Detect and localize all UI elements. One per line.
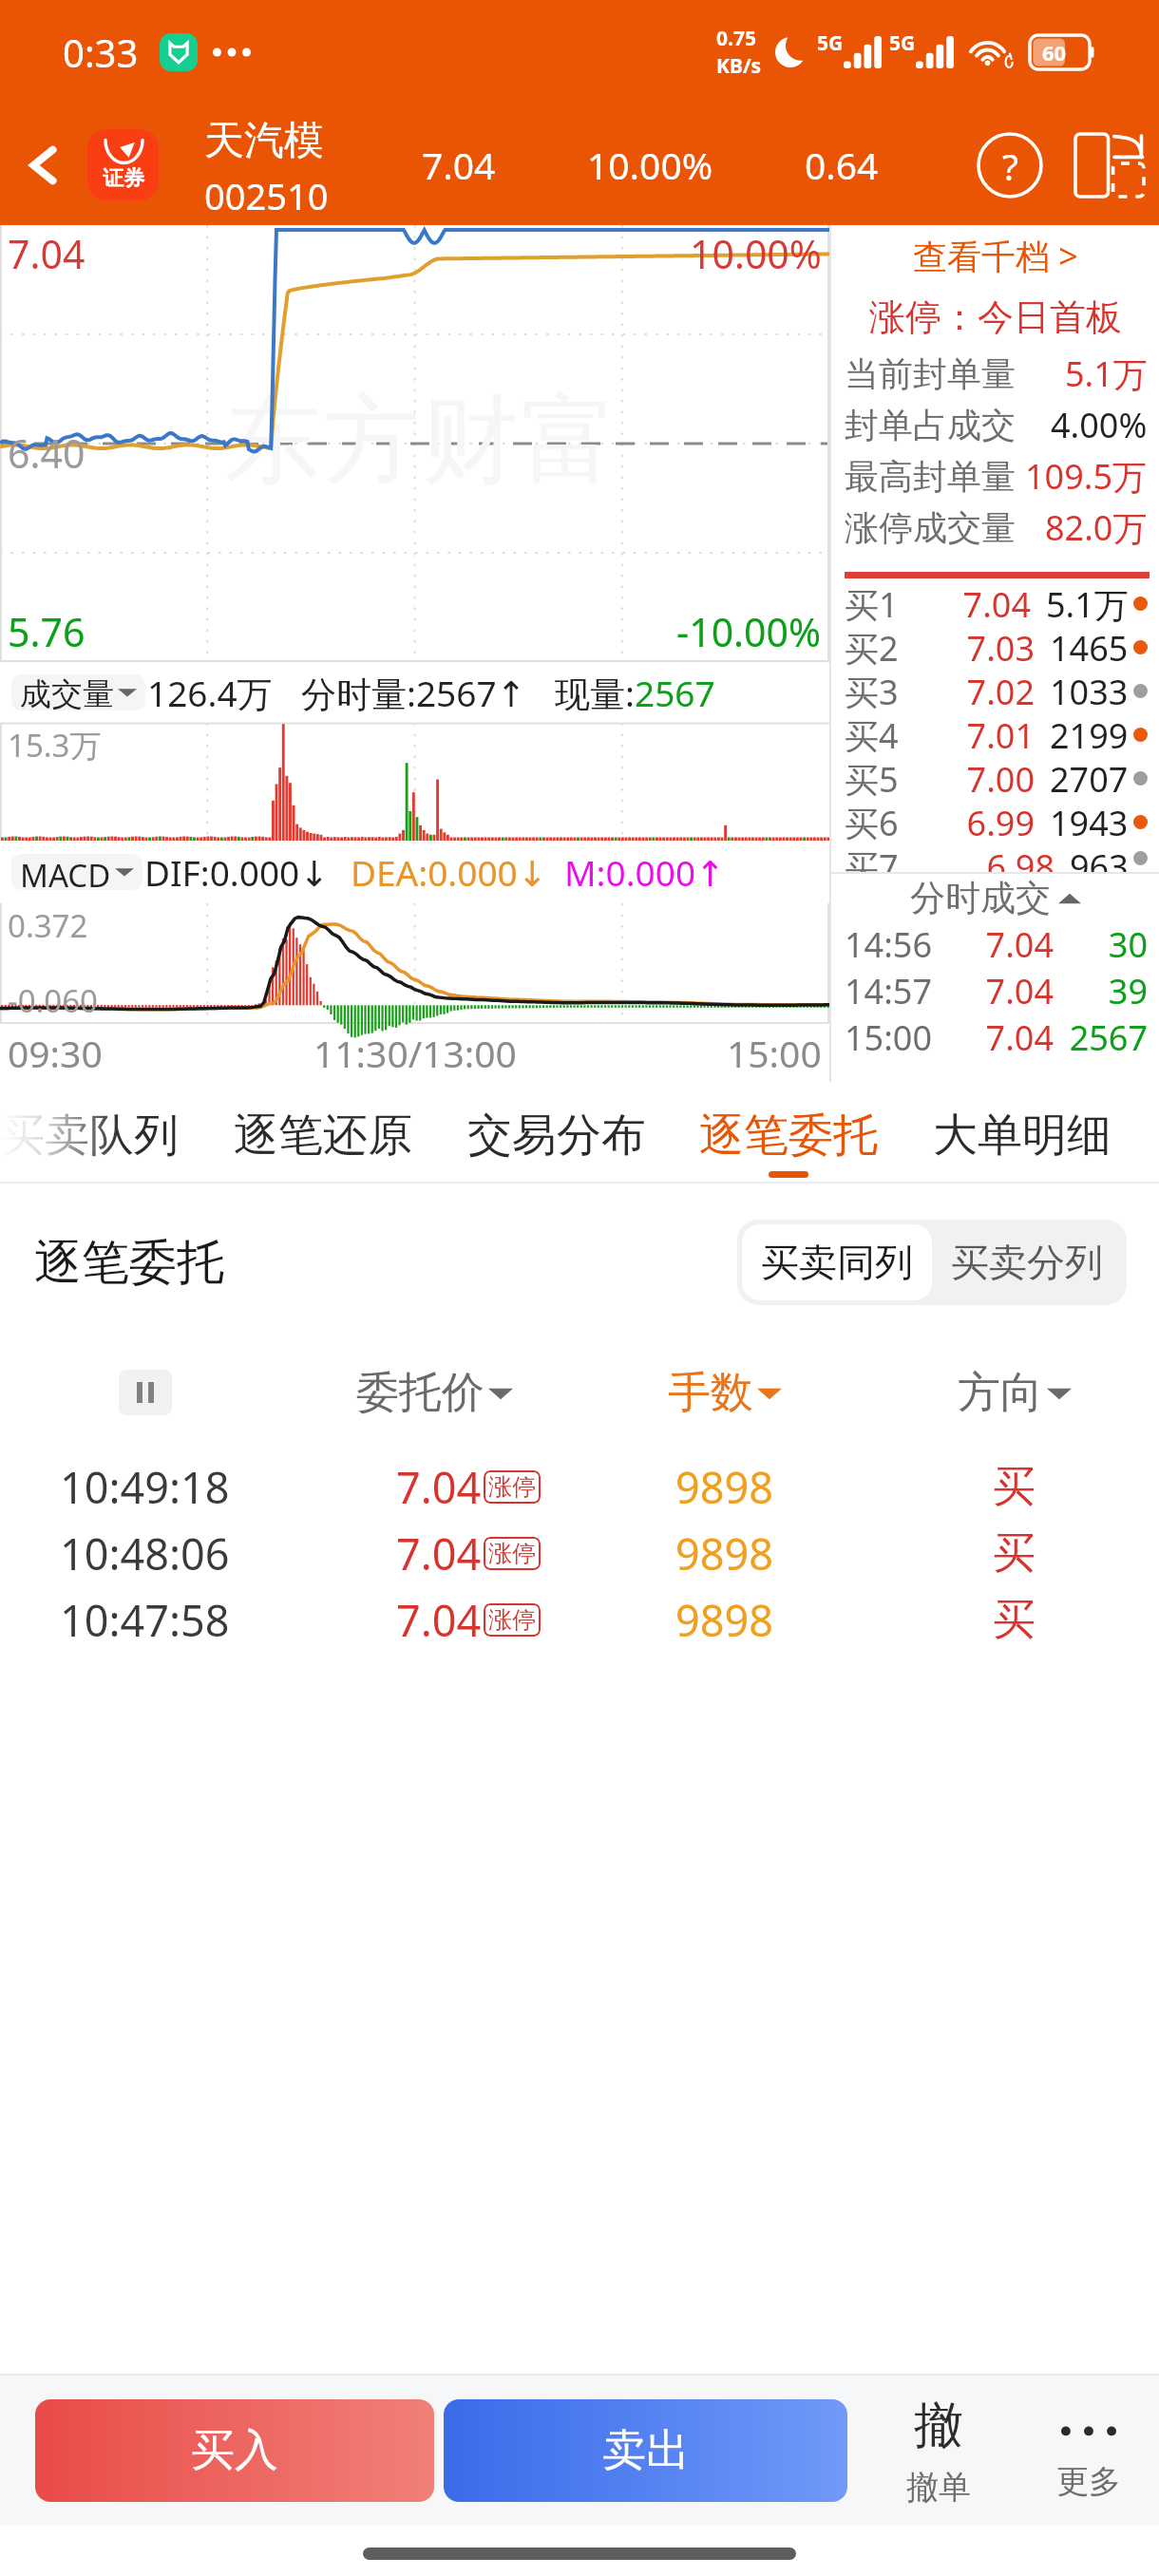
staticText: -0.060 [8, 979, 98, 1022]
staticText: 126.4万 [147, 669, 273, 717]
button[interactable]: 买6 [845, 800, 1148, 843]
staticText: 天汽模 [204, 116, 324, 166]
button[interactable]: 买卖队列 [0, 1082, 179, 1184]
staticText: 14:56 [845, 921, 933, 968]
staticText: 6.99 [899, 800, 1035, 843]
staticText: 委托价 [356, 1366, 484, 1420]
button[interactable]: Back [0, 104, 87, 225]
staticText: 卖出 [602, 2423, 690, 2478]
staticText: 109.5万 [1025, 453, 1148, 500]
staticText: 30 [1054, 921, 1148, 968]
staticText: 5.76 [8, 605, 85, 658]
staticText: 10:48:06 [60, 1525, 230, 1582]
staticText: 7.04 [933, 1014, 1054, 1061]
staticText: 5G [889, 29, 916, 57]
staticText: 39 [1054, 968, 1148, 1014]
button[interactable]: MACD [11, 854, 142, 890]
button[interactable]: 委托价 [290, 1341, 579, 1444]
staticText: 7.01 [899, 712, 1035, 756]
staticText: 2567 [635, 669, 715, 716]
button[interactable]: 买入 [35, 2399, 434, 2502]
staticText: 10:49:18 [60, 1458, 230, 1516]
button[interactable]: Securities [87, 129, 159, 200]
staticText: 1033 [1050, 669, 1129, 712]
staticText: 买卖同列 [761, 1239, 913, 1286]
staticText: DIF:0.000↓ [144, 848, 330, 896]
staticText: 东方财富 [223, 381, 618, 502]
button[interactable]: 手数 [579, 1341, 869, 1444]
button[interactable]: 逐笔委托 [699, 1082, 878, 1184]
button[interactable]: 分时成交 [831, 874, 1159, 921]
staticText: 963 [1070, 843, 1129, 872]
staticText: 涨停：今日首板 [869, 294, 1122, 340]
staticText: 60 [1042, 38, 1067, 66]
button[interactable]: 10:49:18 [0, 1453, 1159, 1520]
button[interactable]: Split screen [1072, 123, 1148, 207]
button[interactable]: 买卖同列 [742, 1224, 932, 1300]
staticText: 15:00 [727, 1028, 822, 1078]
staticText: 15.3万 [8, 724, 102, 767]
staticText: -10.00% [676, 605, 822, 658]
button[interactable]: 逐笔还原 [234, 1082, 412, 1184]
staticText: 现量: [555, 669, 635, 717]
button[interactable]: 10:47:58 [0, 1586, 1159, 1653]
staticText: 10.00% [587, 140, 713, 190]
staticText: 7.04 [8, 227, 85, 280]
button[interactable]: 交易分布 [467, 1082, 646, 1184]
staticText: 7.04 [396, 1458, 482, 1516]
button[interactable]: 买4 [845, 712, 1148, 756]
staticText: 1943 [1050, 800, 1129, 843]
staticText: 买3 [845, 669, 899, 712]
staticText: 2199 [1050, 712, 1129, 756]
staticText: 2567 [1054, 1014, 1148, 1061]
button[interactable]: 大单明细 [933, 1082, 1111, 1184]
button[interactable]: 成交量 [11, 674, 145, 710]
button[interactable]: 买2 [845, 625, 1148, 669]
button[interactable]: 买卖分列 [932, 1224, 1122, 1300]
staticText: 7.04 [396, 1525, 482, 1582]
staticText: 分时成交 [910, 876, 1051, 920]
staticText: 0.64 [805, 140, 879, 190]
staticText: 0.75 [716, 25, 756, 52]
staticText: 7.04 [396, 1591, 482, 1649]
staticText: 5.1万 [1046, 581, 1129, 625]
staticText: 2707 [1050, 756, 1129, 800]
button[interactable]: 查看千档 > [831, 225, 1159, 287]
staticText: 7.02 [899, 669, 1035, 712]
staticText: 7.00 [899, 756, 1035, 800]
button[interactable]: Help [967, 123, 1053, 208]
staticText: 10:47:58 [60, 1591, 230, 1649]
staticText: 方向 [958, 1366, 1043, 1420]
staticText: 查看千档 > [913, 233, 1078, 279]
staticText: 逐笔还原 [234, 1108, 412, 1164]
button[interactable]: 卖出 [444, 2399, 847, 2502]
staticText: 14:57 [845, 968, 933, 1014]
staticText: 9898 [675, 1591, 773, 1649]
button[interactable]: 撤 [883, 2376, 994, 2526]
button[interactable]: 买1 [845, 581, 1148, 625]
button[interactable]: 买5 [845, 756, 1148, 800]
button[interactable]: Pause [119, 1370, 172, 1415]
staticText: 更多 [1056, 2461, 1121, 2502]
button[interactable]: 更多 [1043, 2376, 1134, 2526]
staticText: 买卖分列 [951, 1239, 1103, 1286]
button[interactable]: 买3 [845, 669, 1148, 712]
staticText: 0:33 [63, 27, 139, 78]
staticText: 002510 [204, 171, 329, 220]
staticText: 9898 [675, 1525, 773, 1582]
staticText: 09:30 [8, 1028, 103, 1078]
staticText: 7.04 [899, 581, 1031, 625]
staticText: 大单明细 [933, 1108, 1111, 1164]
button[interactable]: 买7 [845, 843, 1148, 872]
staticText: 买入 [191, 2423, 278, 2478]
staticText: 10.00% [690, 227, 822, 280]
staticText: 买4 [845, 712, 899, 756]
button[interactable]: 10:48:06 [0, 1520, 1159, 1586]
button[interactable]: 方向 [869, 1341, 1159, 1444]
staticText: 7.04 [933, 921, 1054, 968]
staticText: 7.04 [422, 140, 496, 190]
staticText: 6.40 [8, 426, 85, 480]
staticText: 买5 [845, 756, 899, 800]
staticText: 1465 [1050, 625, 1129, 669]
staticText: 撤 [914, 2395, 963, 2457]
